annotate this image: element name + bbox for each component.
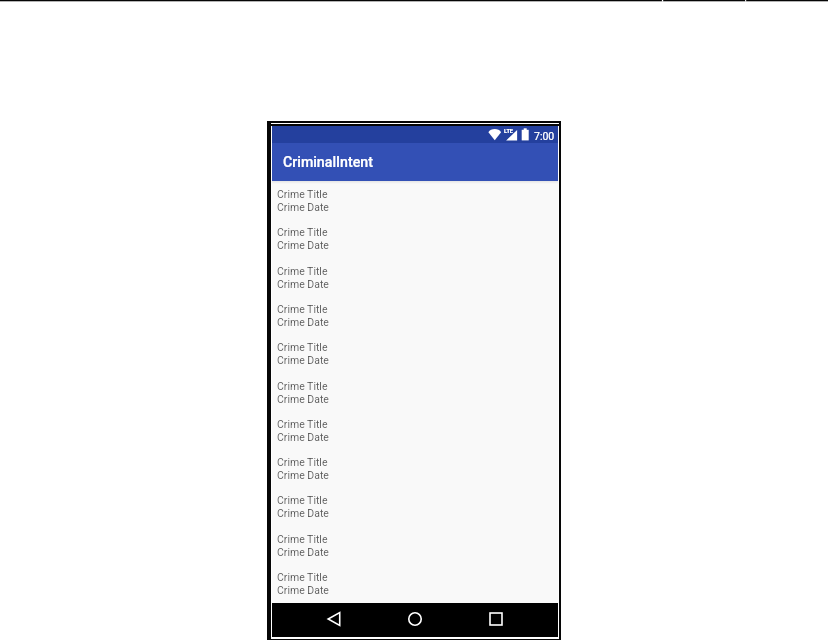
staticText: Crime Title (277, 341, 328, 353)
button[interactable]: Crime Title (272, 334, 558, 372)
staticText: Crime Date (277, 507, 329, 519)
staticText: Crime Title (277, 494, 328, 506)
staticText: Crime Title (277, 188, 328, 200)
staticText: Crime Title (277, 265, 328, 277)
button[interactable]: Crime Title (272, 258, 558, 296)
staticText: Crime Title (277, 418, 328, 430)
staticText: Crime Title (277, 533, 328, 545)
staticText: Crime Title (277, 226, 328, 238)
button[interactable]: Crime Title (272, 526, 558, 564)
button[interactable]: Crime Title (272, 487, 558, 525)
staticText: Crime Date (277, 393, 329, 405)
staticText: LTE (504, 128, 514, 135)
staticText: Crime Date (277, 278, 329, 290)
staticText: Crime Date (277, 584, 329, 596)
staticText: Crime Date (277, 239, 329, 251)
button[interactable]: Crime Title (272, 602, 558, 637)
button[interactable]: Crime Title (272, 564, 558, 602)
staticText: 7:00 (534, 130, 555, 142)
staticText: Crime Title (277, 609, 328, 621)
staticText: Crime Title (277, 380, 328, 392)
staticText: CriminalIntent (283, 154, 373, 171)
staticText: Crime Date (277, 469, 329, 481)
button[interactable]: Crime Title (272, 411, 558, 449)
staticText: Crime Date (277, 431, 329, 443)
button[interactable]: Crime Title (272, 373, 558, 411)
staticText: Crime Title (277, 303, 328, 315)
button[interactable]: Back (323, 608, 345, 630)
staticText: Crime Date (277, 201, 329, 213)
button[interactable]: Crime Title (272, 296, 558, 334)
staticText: Crime Title (277, 456, 328, 468)
staticText: Crime Title (277, 571, 328, 583)
button[interactable]: Crime Title (272, 219, 558, 257)
button[interactable]: Crime Title (272, 181, 558, 219)
staticText: Crime Date (277, 354, 329, 366)
button[interactable]: Crime Title (272, 449, 558, 487)
staticText: Crime Date (277, 316, 329, 328)
staticText: Crime Date (277, 546, 329, 558)
button[interactable]: CriminalIntent (272, 143, 558, 181)
button[interactable]: Home (404, 608, 426, 630)
button[interactable]: Recents (485, 608, 507, 630)
